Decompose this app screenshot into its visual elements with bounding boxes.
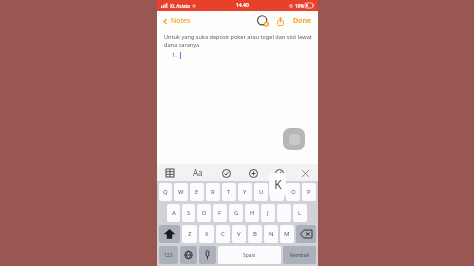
staticText: H — [250, 209, 255, 217]
button[interactable]: O — [286, 183, 300, 201]
staticText: 1. — [172, 51, 177, 59]
button[interactable]: A — [167, 204, 180, 222]
staticText: D — [202, 209, 207, 217]
button[interactable]: G — [229, 204, 243, 222]
staticText: L — [298, 209, 302, 217]
staticText: O — [291, 188, 296, 196]
staticText: S — [187, 209, 191, 217]
staticText: E — [195, 188, 199, 196]
button[interactable]: R — [206, 183, 220, 201]
button[interactable]: D — [197, 204, 211, 222]
staticText: Spasi — [243, 252, 256, 259]
button[interactable]: Kembali — [283, 246, 316, 264]
staticText: 123 — [164, 252, 173, 259]
button[interactable]: J — [261, 204, 275, 222]
staticText: M — [284, 230, 290, 238]
staticText: W — [178, 188, 184, 196]
staticText: Kembali — [290, 252, 310, 259]
staticText: X — [205, 230, 209, 238]
staticText: N — [269, 230, 274, 238]
staticText: F — [218, 209, 222, 217]
staticText: P — [307, 188, 311, 196]
button[interactable]: N — [264, 225, 278, 243]
button[interactable]: Checklist — [220, 167, 232, 179]
button[interactable]: Dictation — [199, 246, 216, 264]
button[interactable]: L — [293, 204, 307, 222]
button[interactable]: Share — [274, 15, 287, 28]
staticText: A — [172, 209, 176, 217]
staticText: K — [274, 176, 282, 192]
button[interactable]: Z — [182, 225, 197, 243]
button[interactable]: Markup — [273, 167, 285, 179]
staticText: V — [237, 230, 241, 238]
button[interactable]: P — [302, 183, 316, 201]
button[interactable]: Spasi — [218, 246, 281, 264]
button[interactable]: Shift — [159, 225, 180, 243]
staticText: Untuk yang suka deposit poker atau togel… — [164, 33, 312, 49]
button[interactable]: K — [277, 204, 291, 222]
button[interactable]: X — [199, 225, 214, 243]
staticText: Q — [163, 188, 168, 196]
button[interactable]: Notes — [161, 14, 192, 28]
button[interactable]: Text format — [190, 164, 206, 181]
staticText: B — [253, 230, 257, 238]
staticText: U — [259, 188, 264, 196]
button[interactable]: C — [216, 225, 230, 243]
staticText: G — [234, 209, 239, 217]
button[interactable]: Q — [159, 183, 172, 201]
button[interactable]: AssistiveTouch — [283, 128, 305, 150]
staticText: I — [276, 188, 279, 196]
button[interactable]: E — [190, 183, 204, 201]
staticText: Aa — [193, 167, 203, 178]
button[interactable]: Backspace — [296, 225, 316, 243]
staticText: Y — [243, 188, 247, 196]
staticText: R — [211, 188, 215, 196]
button[interactable]: V — [232, 225, 246, 243]
staticText: XL Axiata — [170, 3, 190, 9]
staticText: Notes — [171, 16, 191, 26]
button[interactable]: Y — [238, 183, 252, 201]
button[interactable]: I — [270, 183, 284, 201]
staticText: 19% — [295, 3, 304, 9]
staticText: C — [221, 230, 225, 238]
staticText: 14.40 — [236, 2, 249, 9]
button[interactable]: W — [174, 183, 188, 201]
staticText: J — [267, 209, 269, 217]
button[interactable]: Add people — [256, 14, 270, 28]
button[interactable]: 123 — [159, 246, 178, 264]
button[interactable]: Switch language — [180, 246, 197, 264]
staticText: T — [227, 188, 231, 196]
button[interactable]: Done — [291, 14, 314, 28]
staticText: Done — [293, 16, 312, 26]
button[interactable]: Close keyboard — [299, 167, 311, 179]
button[interactable]: F — [213, 204, 227, 222]
button[interactable]: H — [245, 204, 259, 222]
staticText: Z — [188, 230, 192, 238]
button[interactable]: S — [182, 204, 195, 222]
button[interactable]: Table — [164, 167, 176, 179]
button[interactable]: M — [280, 225, 294, 243]
button[interactable]: B — [248, 225, 262, 243]
button[interactable]: Camera — [247, 167, 259, 179]
button[interactable]: T — [222, 183, 236, 201]
button[interactable]: U — [254, 183, 268, 201]
